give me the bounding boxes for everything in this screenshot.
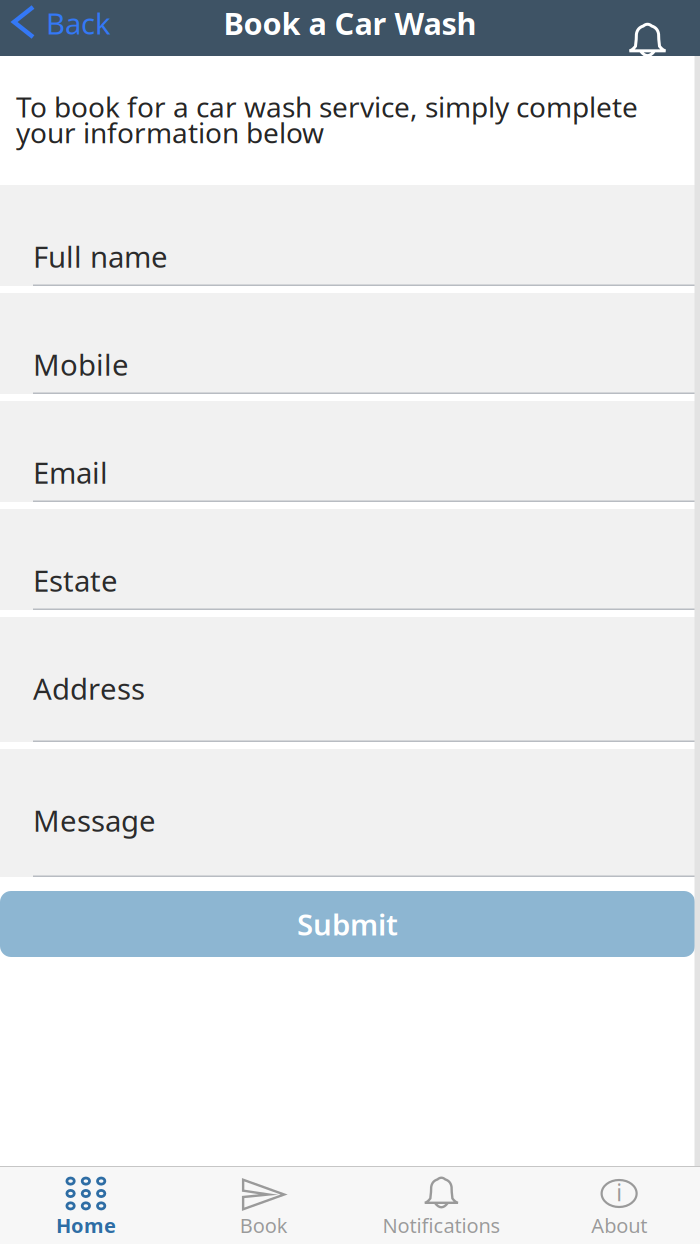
staticText: Full name (33, 237, 168, 276)
button[interactable]: Submit (0, 891, 695, 957)
button[interactable]: Back (0, 2, 111, 53)
staticText: About (591, 1212, 647, 1239)
button[interactable]: Home (0, 1167, 175, 1244)
button[interactable]: i (530, 1167, 700, 1244)
button[interactable]: Book (175, 1167, 353, 1244)
staticText: Book (240, 1212, 288, 1239)
staticText: i (616, 1177, 622, 1207)
staticText: Address (33, 669, 145, 708)
staticText: Book a Car Wash (223, 3, 476, 43)
button[interactable]: Notifications (352, 1167, 530, 1244)
staticText: Mobile (33, 345, 129, 384)
staticText: Email (33, 453, 108, 492)
staticText: Estate (33, 561, 118, 600)
button[interactable]: Notifications (629, 11, 700, 45)
staticText: Message (33, 801, 156, 840)
staticText: Home (56, 1212, 116, 1239)
staticText: Back (46, 3, 111, 42)
staticText: To book for a car wash service, simply c… (16, 88, 638, 151)
staticText: Submit (297, 904, 398, 943)
staticText: Notifications (382, 1212, 500, 1239)
